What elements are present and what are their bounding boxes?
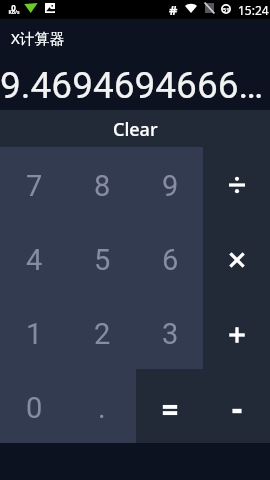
button[interactable]: 3 [136,295,204,369]
button[interactable]: Clear [0,110,270,147]
staticText: 15:24 [238,2,269,18]
button[interactable]: 8 [68,147,136,221]
staticText: 3 [162,317,179,351]
button[interactable]: 0 [0,369,68,443]
button[interactable]: 9 [136,147,204,221]
staticText: 51 [223,6,230,13]
staticText: KB/s [8,9,20,16]
staticText: 0 [26,391,43,425]
staticText: 9 [162,169,179,203]
staticText: X计算器 [11,28,65,48]
button[interactable]: Plus [204,295,270,369]
button[interactable]: Minus [204,369,270,443]
button[interactable]: 4 [0,221,68,295]
button[interactable]: Equals [136,369,204,443]
button[interactable]: Divide [204,147,270,221]
staticText: 6 [162,243,179,277]
staticText: 9.4694694666… [0,64,264,107]
button[interactable]: 6 [136,221,204,295]
button[interactable]: 7 [0,147,68,221]
button[interactable]: 5 [68,221,136,295]
staticText: 4 [26,243,43,277]
staticText: 5 [94,243,111,277]
staticText: 0 [11,2,16,13]
button[interactable]: . [68,369,136,443]
staticText: 1 [26,317,43,351]
staticText: Clear [113,117,158,142]
button[interactable]: Multiply [204,221,270,295]
staticText: 2 [94,317,111,351]
button[interactable]: 1 [0,295,68,369]
staticText: # [169,1,178,19]
staticText: . [98,391,106,425]
staticText: 7 [26,169,43,203]
button[interactable]: 2 [68,295,136,369]
staticText: 8 [94,169,111,203]
